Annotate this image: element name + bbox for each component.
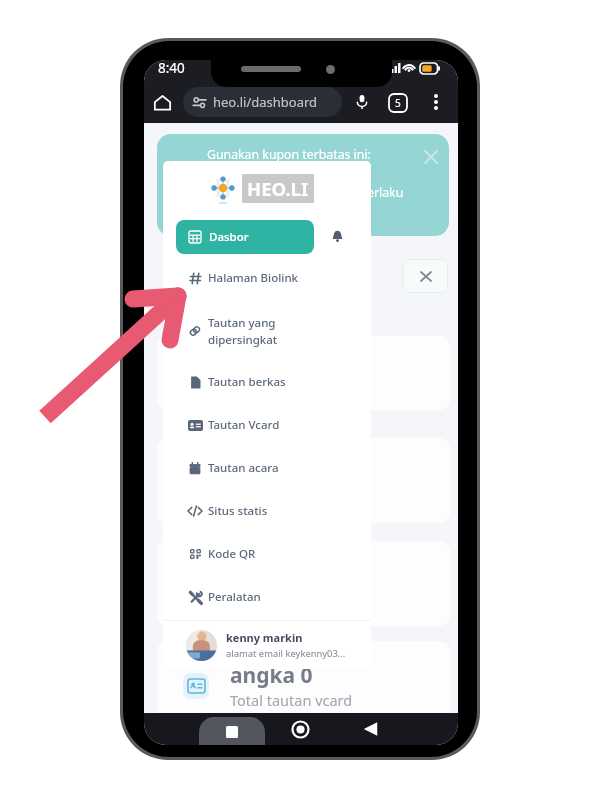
button[interactable]: Situs statis: [163, 489, 371, 532]
staticText: Total tautan vcard: [230, 690, 353, 710]
staticText: Tautan berkas: [208, 374, 286, 390]
button[interactable]: Home: [286, 713, 314, 745]
button[interactable]: Recent apps: [199, 717, 265, 745]
button[interactable]: Dasbor: [176, 220, 314, 254]
button[interactable]: Notifications: [325, 224, 350, 249]
staticText: alamat email keykenny03...: [226, 647, 346, 660]
button[interactable]: Tautan berkas: [163, 360, 371, 403]
button[interactable]: Voice search: [349, 89, 375, 115]
button[interactable]: heo.li/dashboard: [183, 87, 342, 117]
button[interactable]: Peralatan: [163, 575, 371, 618]
staticText: Berlaku: [359, 184, 404, 201]
staticText: Situs statis: [208, 503, 268, 519]
button[interactable]: kenny markin: [163, 621, 371, 669]
button[interactable]: Home: [148, 88, 176, 116]
button[interactable]: Tautan acara: [163, 446, 371, 489]
button[interactable]: More options: [424, 90, 448, 114]
staticText: Tautan Vcard: [208, 417, 280, 433]
button[interactable]: Close: [403, 259, 448, 293]
staticText: Gunakan kupon terbatas ini:: [207, 146, 371, 163]
staticText: Tautan yang dipersingkat: [208, 315, 278, 348]
staticText: 8:40: [158, 60, 185, 77]
button[interactable]: Dismiss banner: [423, 149, 439, 165]
staticText: angka 0: [230, 661, 313, 690]
button[interactable]: Tabs: [389, 94, 407, 112]
staticText: kenny markin: [226, 630, 303, 645]
button[interactable]: Kode QR: [163, 532, 371, 575]
button[interactable]: Tautan yang dipersingkat: [163, 302, 371, 360]
staticText: Kode QR: [208, 546, 256, 562]
staticText: Tautan acara: [208, 460, 279, 476]
button[interactable]: Back: [356, 713, 384, 745]
button[interactable]: Halaman Biolink: [163, 254, 371, 302]
staticText: HEO.LI: [247, 176, 309, 201]
staticText: 5: [395, 96, 401, 110]
staticText: Halaman Biolink: [208, 270, 299, 286]
staticText: Dasbor: [209, 229, 249, 245]
staticText: Peralatan: [208, 589, 261, 605]
staticText: heo.li/dashboard: [213, 93, 318, 111]
button[interactable]: Tautan Vcard: [163, 403, 371, 446]
